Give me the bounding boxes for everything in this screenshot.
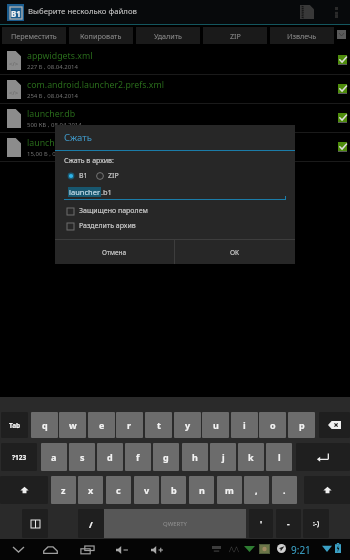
button[interactable]: k (238, 443, 264, 471)
button[interactable]: i (231, 412, 258, 438)
button[interactable]: Копировать (69, 27, 133, 44)
button[interactable]: d (97, 443, 123, 471)
button[interactable]: ?123 (1, 443, 37, 471)
staticText: e (99, 419, 105, 431)
staticText: com.android.launcher2.prefs.xml (27, 79, 165, 91)
button[interactable]: Разделить архив (67, 221, 136, 231)
button[interactable]: Отмена (55, 240, 174, 264)
button[interactable]: Switch keyboard (22, 509, 48, 538)
button[interactable]: Home (40, 539, 61, 560)
staticText: s (80, 451, 85, 463)
button[interactable]: m (217, 476, 242, 504)
button[interactable]: p (288, 412, 315, 438)
staticText: x (88, 484, 94, 496)
button[interactable]: f (125, 443, 151, 471)
staticText: b (171, 484, 177, 496)
button[interactable] (67, 172, 75, 180)
staticText: l (278, 451, 281, 463)
staticText: h (192, 451, 198, 463)
button[interactable]: a (41, 443, 67, 471)
button[interactable]: Volume down (112, 539, 133, 560)
staticText: appwidgets.xml (27, 50, 93, 62)
button[interactable]: v (134, 476, 159, 504)
button[interactable]: OK (175, 240, 295, 264)
button[interactable]: h (182, 443, 208, 471)
button[interactable]: Volume up (147, 539, 168, 560)
button[interactable]: ' (249, 509, 273, 538)
staticText: d (107, 451, 113, 463)
staticText: :-) (313, 519, 320, 528)
button[interactable]: launcher.db (0, 104, 350, 132)
staticText: j (222, 451, 225, 463)
button[interactable]: j (210, 443, 236, 471)
staticText: launcher.db-journal (27, 137, 108, 149)
button[interactable]: Shift (0, 476, 48, 504)
staticText: w (69, 419, 77, 431)
button[interactable]: o (259, 412, 286, 438)
staticText: ⋀⋀ (229, 545, 239, 552)
button[interactable]: Переместить (2, 27, 66, 44)
button[interactable]: QWERTY (104, 509, 246, 538)
button[interactable]: Backspace (319, 412, 350, 438)
button[interactable]: Recent apps (77, 539, 98, 560)
button[interactable]: l (266, 443, 292, 471)
button[interactable]: c (106, 476, 131, 504)
button[interactable]: launcher.db-journal (0, 133, 350, 161)
button[interactable]: , (244, 476, 269, 504)
staticText: Защищено паролем (79, 206, 148, 216)
button[interactable]: . (272, 476, 297, 504)
staticText: k (248, 451, 254, 463)
staticText: z (61, 484, 66, 496)
staticText: .b1 (101, 187, 112, 197)
button[interactable]: :-) (303, 509, 329, 538)
button[interactable]: ZIP (203, 27, 267, 44)
button[interactable]: w (59, 412, 86, 438)
button[interactable]: Enter (296, 443, 350, 471)
button[interactable]: s (69, 443, 95, 471)
button[interactable]: Back (8, 539, 29, 560)
button[interactable]: q (31, 412, 58, 438)
staticText: c (116, 484, 121, 496)
button[interactable]: e (88, 412, 115, 438)
staticText: Выберите несколько файлов (28, 6, 137, 17)
button[interactable]: y (174, 412, 201, 438)
button[interactable] (96, 172, 104, 180)
staticText: u (213, 419, 219, 431)
button[interactable]: r (116, 412, 143, 438)
button[interactable]: z (51, 476, 76, 504)
staticText: ' (260, 518, 263, 529)
staticText: </> (9, 60, 19, 68)
staticText: Tab (9, 421, 21, 430)
button[interactable]: / (78, 509, 104, 538)
button[interactable]: Удалить (136, 27, 200, 44)
staticText: n (199, 484, 205, 496)
staticText: r (127, 419, 132, 431)
staticText: / (89, 518, 93, 530)
staticText: . (283, 484, 286, 496)
staticText: B1 (11, 8, 21, 19)
button[interactable]: Защищено паролем (67, 206, 148, 216)
button[interactable]: Shift (304, 476, 350, 504)
button[interactable]: </> (0, 46, 350, 74)
button[interactable]: x (78, 476, 103, 504)
button[interactable]: t (145, 412, 172, 438)
button[interactable]: Tab (1, 412, 28, 438)
staticText: o (270, 419, 276, 431)
button[interactable]: Извлечь (270, 27, 334, 44)
button[interactable]: More options (328, 2, 344, 22)
staticText: i (243, 419, 246, 431)
button[interactable]: u (202, 412, 229, 438)
button[interactable]: b (161, 476, 186, 504)
staticText: g (163, 451, 169, 463)
button[interactable]: g (153, 443, 179, 471)
button[interactable]: - (276, 509, 301, 538)
staticText: OK (230, 248, 240, 257)
button[interactable]: </> (0, 75, 350, 103)
button[interactable]: n (189, 476, 214, 504)
staticText: m (225, 484, 234, 496)
staticText: launcher.db (27, 108, 76, 120)
button[interactable]: Archive (298, 3, 316, 21)
staticText: Сжать (64, 131, 92, 144)
button[interactable]: Expand actions (337, 30, 346, 39)
staticText: t (157, 419, 161, 431)
